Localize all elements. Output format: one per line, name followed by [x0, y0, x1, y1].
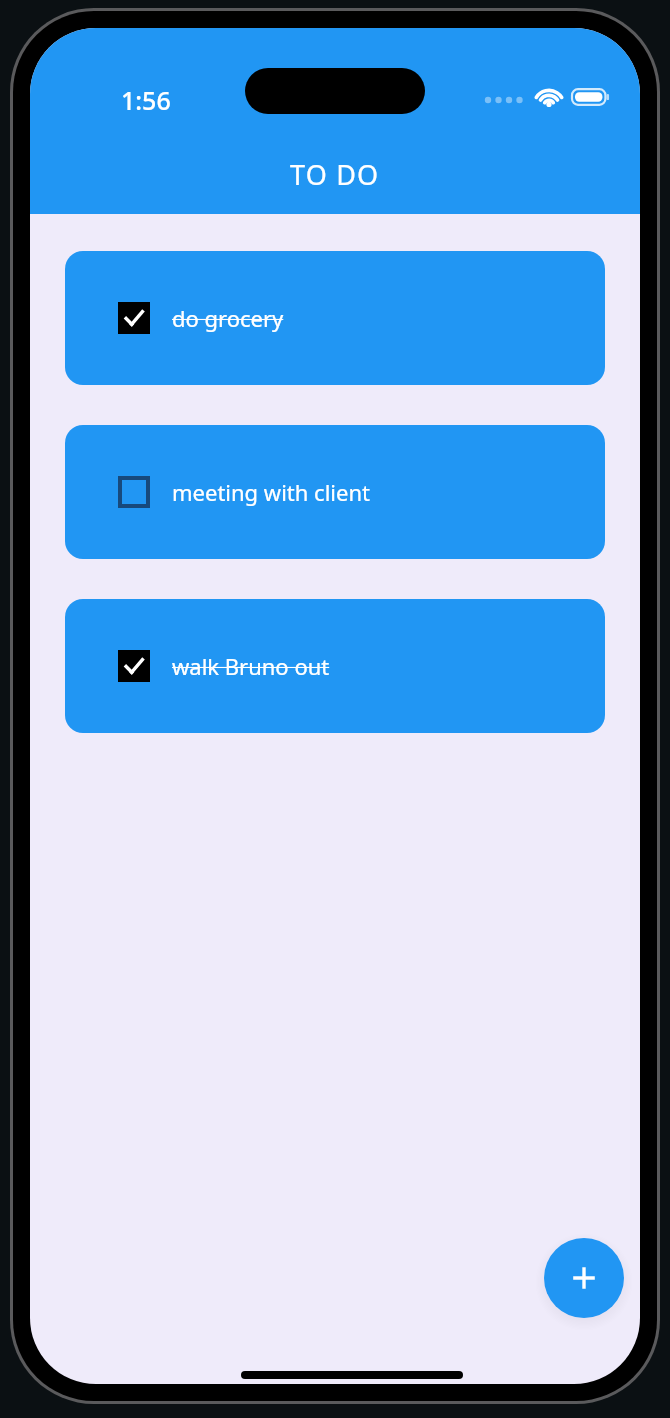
button[interactable]: walk Bruno out	[65, 599, 605, 733]
staticText: meeting with client	[172, 477, 370, 507]
staticText: 1:56	[121, 83, 171, 117]
staticText: walk Bruno out	[172, 651, 330, 681]
button[interactable]: Add task	[544, 1238, 624, 1318]
button[interactable]: meeting with client	[65, 425, 605, 559]
staticText: do grocery	[172, 303, 284, 333]
staticText: TO DO	[290, 156, 380, 193]
button[interactable]: do grocery	[65, 251, 605, 385]
